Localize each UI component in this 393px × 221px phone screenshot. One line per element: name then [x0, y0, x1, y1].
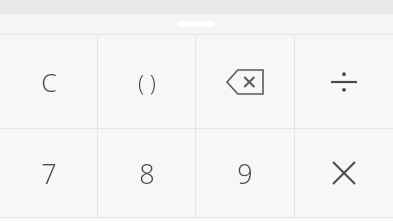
- staticText: ( ): [138, 67, 156, 97]
- staticText: 9: [237, 155, 253, 192]
- button[interactable]: 9: [196, 129, 294, 217]
- button[interactable]: C: [0, 35, 97, 128]
- staticText: C: [41, 65, 57, 99]
- button[interactable]: ( ): [98, 35, 195, 128]
- staticText: 8: [139, 155, 155, 192]
- button[interactable]: 7: [0, 129, 97, 217]
- button[interactable]: Divide: [295, 35, 393, 128]
- button[interactable]: 8: [98, 129, 195, 217]
- button[interactable]: Multiply: [295, 129, 393, 217]
- staticText: 7: [41, 155, 57, 192]
- button[interactable]: Backspace: [196, 35, 294, 128]
